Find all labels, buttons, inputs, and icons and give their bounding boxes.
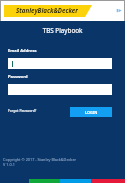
staticText: Email Address	[8, 48, 37, 54]
staticText: StanleyBlack&Decker	[16, 6, 78, 14]
staticText: Copyright © 2017 - Stanley Black&Decker	[3, 157, 77, 162]
staticText: TBS Playbook	[0, 26, 125, 35]
staticText: Password	[8, 74, 28, 80]
button[interactable]	[8, 58, 112, 69]
staticText: V 1.0.1	[3, 162, 15, 167]
button[interactable]: Next	[116, 7, 123, 14]
staticText: LOGIN	[85, 110, 98, 115]
button[interactable]: LOGIN	[70, 107, 112, 117]
button[interactable]: Forgot Password?	[8, 108, 37, 113]
